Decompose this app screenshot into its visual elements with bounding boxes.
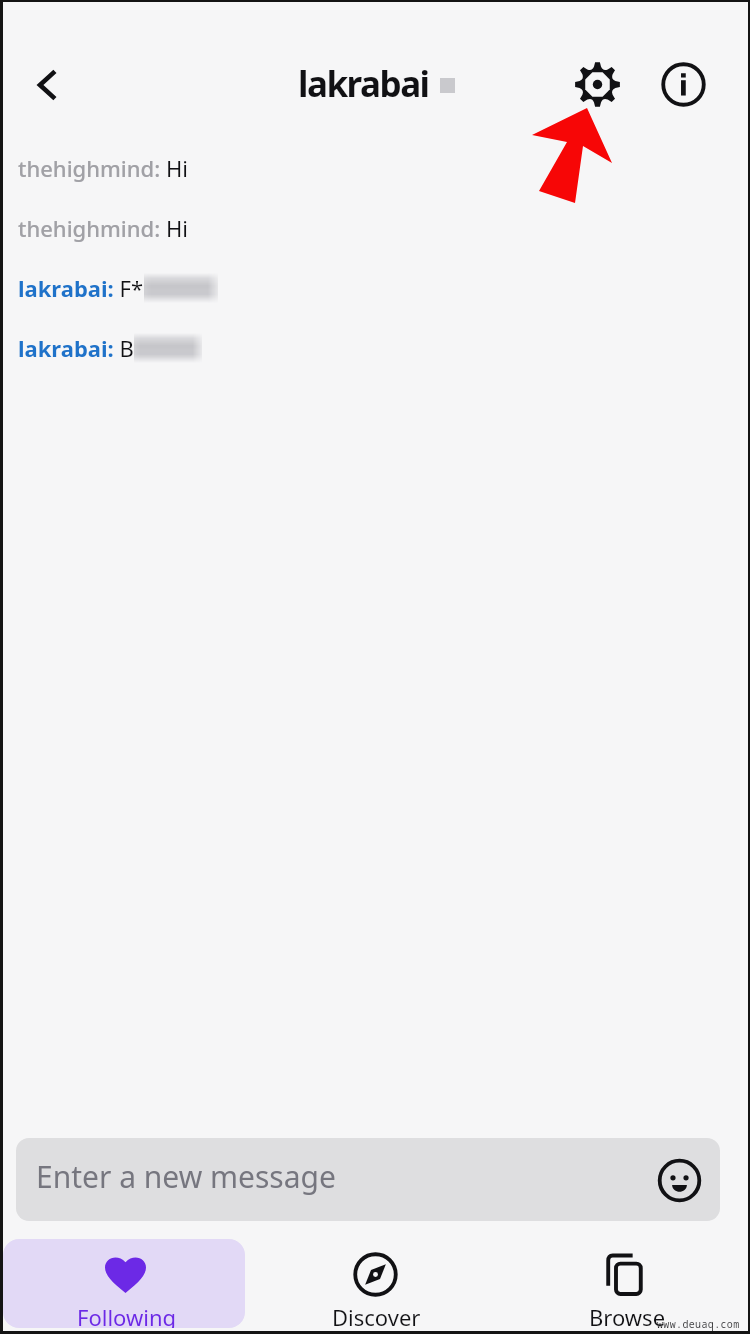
staticText: thehighmind: Hi xyxy=(18,213,188,243)
staticText: Browse xyxy=(589,1302,666,1332)
staticText: Enter a new message xyxy=(36,1156,336,1197)
staticText: www.deuaq.com xyxy=(657,1317,740,1331)
staticText: Discover xyxy=(332,1302,421,1332)
staticText: Following xyxy=(77,1302,177,1328)
staticText: lakrabai xyxy=(298,60,429,108)
staticText: lakrabai: B xyxy=(18,333,134,363)
button[interactable]: Settings xyxy=(563,50,631,118)
button[interactable]: Emoji xyxy=(655,1156,703,1204)
button[interactable]: Discover xyxy=(250,1239,500,1334)
staticText: thehighmind: Hi xyxy=(18,153,188,183)
staticText: lakrabai: F* xyxy=(18,273,144,303)
button[interactable]: Back xyxy=(15,53,79,117)
button[interactable]: Following xyxy=(3,1239,245,1328)
button[interactable]: Info xyxy=(649,50,717,118)
button[interactable]: Enter a new message xyxy=(16,1138,720,1221)
button[interactable]: Browse xyxy=(500,1239,748,1334)
